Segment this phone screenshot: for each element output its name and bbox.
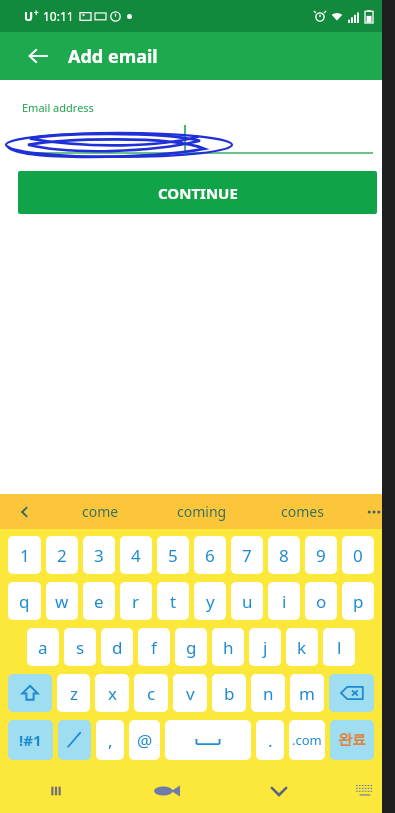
button[interactable]: , [96, 720, 124, 760]
button[interactable]: z [57, 674, 90, 712]
staticText: 10:11 [43, 8, 74, 24]
button[interactable]: j [249, 628, 281, 666]
staticText: + [34, 7, 39, 18]
button[interactable]: 5 [157, 536, 189, 574]
staticText: Add email [68, 44, 158, 69]
staticText: t [170, 590, 177, 613]
staticText: h [223, 636, 234, 659]
button[interactable]: Previous suggestions [0, 494, 50, 529]
button[interactable]: Backspace [329, 674, 374, 712]
staticText: s [76, 636, 85, 659]
button[interactable]: Shift [8, 674, 52, 712]
button[interactable]: 8 [268, 536, 300, 574]
button[interactable]: come [50, 494, 151, 529]
staticText: y [206, 590, 215, 613]
button[interactable]: Hide keyboard [223, 768, 335, 813]
staticText: p [353, 590, 364, 613]
button[interactable]: comes [252, 494, 353, 529]
staticText: c [147, 682, 156, 705]
staticText: k [297, 636, 307, 659]
button[interactable]: b [212, 674, 246, 712]
staticText: Email address [22, 100, 94, 115]
button[interactable]: n [251, 674, 285, 712]
button[interactable]: v [173, 674, 207, 712]
button[interactable]: a [27, 628, 59, 666]
button[interactable]: x [95, 674, 129, 712]
button[interactable]: w [46, 582, 78, 620]
button[interactable]: Home [111, 768, 223, 813]
staticText: x [108, 682, 117, 705]
button[interactable] [165, 720, 251, 760]
button[interactable]: g [175, 628, 207, 666]
button[interactable]: Back [18, 36, 58, 76]
button[interactable]: coming [151, 494, 252, 529]
button[interactable]: Keyboard layout [335, 768, 395, 813]
staticText: .com [292, 731, 322, 749]
button[interactable]: 9 [305, 536, 337, 574]
staticText: u [242, 590, 253, 613]
button[interactable]: k [286, 628, 318, 666]
staticText: coming [177, 502, 227, 521]
staticText: g [186, 636, 197, 659]
button[interactable]: .com [289, 720, 325, 760]
staticText: b [224, 682, 235, 705]
button[interactable]: CONTINUE [18, 171, 377, 214]
staticText: j [263, 636, 268, 659]
staticText: a [38, 636, 48, 659]
button[interactable]: r [120, 582, 152, 620]
button[interactable]: e [83, 582, 115, 620]
button[interactable]: 2 [46, 536, 78, 574]
staticText: o [316, 590, 327, 613]
staticText: v [186, 682, 195, 705]
staticText: 5 [168, 544, 178, 567]
button[interactable] [58, 720, 91, 760]
button[interactable]: i [268, 582, 300, 620]
button[interactable]: u [231, 582, 263, 620]
button[interactable]: More suggestions [353, 494, 395, 529]
staticText: 2 [57, 544, 67, 567]
button[interactable]: 6 [194, 536, 226, 574]
button[interactable]: f [138, 628, 170, 666]
staticText: come [82, 502, 119, 521]
staticText: , [108, 729, 113, 752]
staticText: 6 [205, 544, 215, 567]
button[interactable]: m [290, 674, 324, 712]
staticText: f [151, 636, 157, 659]
staticText: 9 [316, 544, 326, 567]
staticText: r [132, 590, 140, 613]
staticText: 1 [20, 544, 30, 567]
button[interactable]: 3 [83, 536, 115, 574]
button[interactable]: p [342, 582, 374, 620]
staticText: 3 [94, 544, 104, 567]
button[interactable]: c [134, 674, 168, 712]
button[interactable]: 1 [8, 536, 41, 574]
staticText: d [112, 636, 123, 659]
button[interactable]: 4 [120, 536, 152, 574]
button[interactable]: y [194, 582, 226, 620]
staticText: 0 [353, 544, 363, 567]
button[interactable]: s [64, 628, 96, 666]
button[interactable]: q [8, 582, 41, 620]
button[interactable]: t [157, 582, 189, 620]
staticText: 7 [242, 544, 252, 567]
staticText: comes [281, 502, 324, 521]
button[interactable]: l [323, 628, 355, 666]
button[interactable]: h [212, 628, 244, 666]
staticText: @ [137, 729, 153, 752]
button[interactable]: . [256, 720, 284, 760]
button[interactable]: 완료 [330, 720, 374, 760]
button[interactable]: !#1 [8, 720, 53, 760]
button[interactable]: @ [129, 720, 160, 760]
staticText: 완료 [338, 731, 366, 749]
button[interactable]: Recents [0, 768, 111, 813]
staticText: CONTINUE [158, 183, 238, 203]
staticText: q [19, 590, 30, 613]
staticText: i [282, 590, 287, 613]
staticText: n [263, 682, 274, 705]
button[interactable]: 7 [231, 536, 263, 574]
staticText: z [70, 682, 78, 705]
button[interactable]: d [101, 628, 133, 666]
button[interactable]: 0 [342, 536, 374, 574]
staticText: m [299, 682, 315, 705]
button[interactable]: o [305, 582, 337, 620]
